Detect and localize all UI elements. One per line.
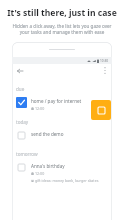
button[interactable]: Toggle complete xyxy=(12,96,112,112)
staticText: gift ideas: money bank, burger skates xyxy=(35,178,99,183)
staticText: Anna's birthday xyxy=(31,163,65,169)
staticText: home / pay for internet xyxy=(31,98,82,104)
staticText: Hidden a click away, the list lets you g… xyxy=(7,23,117,35)
staticText: 12:00 xyxy=(35,171,45,176)
button[interactable]: Back xyxy=(14,65,25,76)
button[interactable]: Add task xyxy=(91,100,111,120)
button[interactable]: Toggle complete xyxy=(16,130,27,141)
button[interactable]: Toggle complete xyxy=(16,162,27,173)
staticText: It's still there, just in case xyxy=(3,7,121,19)
button[interactable]: More options xyxy=(99,65,110,76)
staticText: 12:00 xyxy=(35,106,45,111)
staticText: tomorrow xyxy=(16,151,38,157)
button[interactable]: Toggle complete xyxy=(12,129,112,142)
button[interactable]: Toggle complete xyxy=(16,97,27,108)
button[interactable]: Toggle complete xyxy=(12,161,112,184)
staticText: due xyxy=(16,86,25,92)
staticText: send the demo xyxy=(31,131,64,137)
staticText: today xyxy=(16,119,29,125)
staticText: 10:30 xyxy=(100,59,109,63)
